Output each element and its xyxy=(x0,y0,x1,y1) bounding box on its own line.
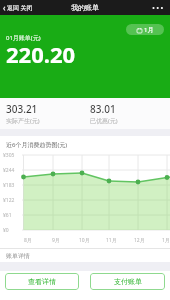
staticText: 实际产生(元) xyxy=(6,117,40,125)
staticText: 10月 xyxy=(79,237,90,244)
staticText: 支付账单 xyxy=(114,277,142,286)
button[interactable]: ‹ xyxy=(3,2,33,13)
staticText: 返回 关闭 xyxy=(7,4,33,12)
staticText: 1月 xyxy=(162,237,170,244)
staticText: 11月 xyxy=(106,237,117,244)
staticText: 我的账单 xyxy=(71,3,99,12)
staticText: ¥244 xyxy=(3,167,15,174)
staticText: 303.21 xyxy=(6,102,38,116)
staticText: ‹ xyxy=(3,2,6,13)
staticText: 83.01 xyxy=(90,102,116,116)
staticText: 220.20 xyxy=(6,39,76,69)
button[interactable] xyxy=(152,4,164,12)
button[interactable]: 账单详情 xyxy=(0,248,170,262)
staticText: ¥122 xyxy=(3,197,15,204)
staticText: ¥305 xyxy=(3,152,15,159)
staticText: 已优惠(元) xyxy=(90,117,118,125)
staticText: 01月账单(元) xyxy=(6,34,41,42)
staticText: 查看详情 xyxy=(28,277,56,286)
staticText: 1月 xyxy=(144,26,154,34)
staticText: 8月 xyxy=(24,237,32,244)
staticText: 近6个月消费趋势图(元) xyxy=(6,141,68,149)
button[interactable]: 1月 xyxy=(126,24,164,35)
staticText: 12月 xyxy=(134,237,145,244)
staticText: 9月 xyxy=(52,237,60,244)
button[interactable]: 支付账单 xyxy=(90,273,165,290)
staticText: ¥61 xyxy=(3,212,12,219)
staticText: 账单详情 xyxy=(6,252,30,260)
staticText: ¥0 xyxy=(3,227,9,234)
button[interactable]: 查看详情 xyxy=(5,273,79,290)
staticText: ¥183 xyxy=(3,182,15,189)
